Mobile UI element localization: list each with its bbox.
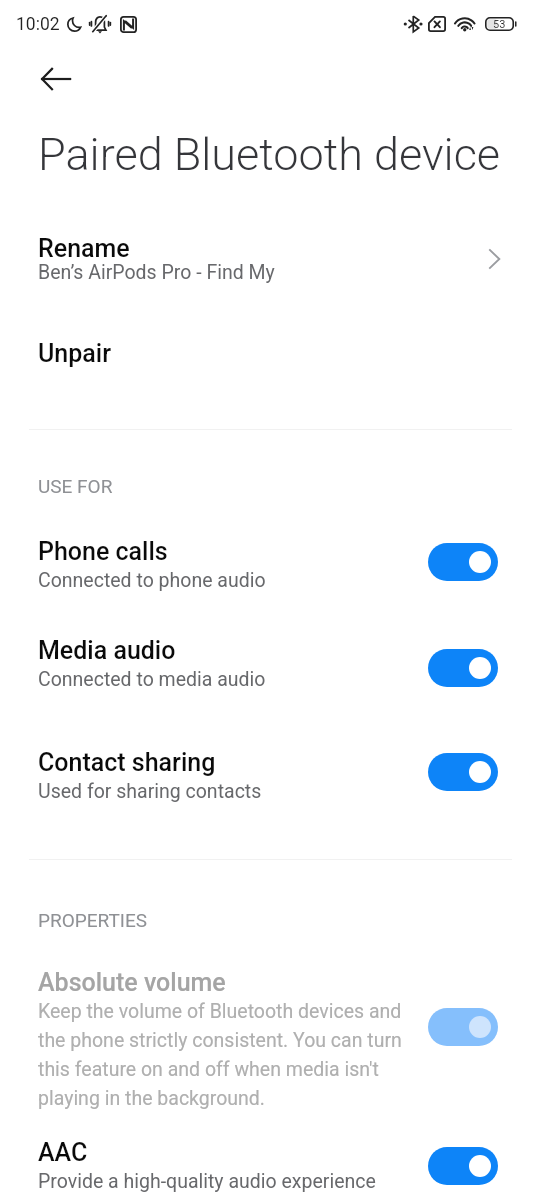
staticText: Media audio (38, 636, 176, 665)
staticText: Paired Bluetooth device (38, 128, 501, 181)
staticText: Ben’s AirPods Pro - Find My (38, 261, 275, 284)
button[interactable]: AAC switch, on (428, 1147, 498, 1185)
button[interactable]: Contact sharing switch, on (428, 753, 498, 791)
staticText: Absolute volume (38, 968, 226, 997)
button[interactable]: Rename (0, 222, 540, 294)
button[interactable]: Absolute volume switch, on (428, 1008, 498, 1046)
staticText: 53 (493, 18, 506, 31)
button[interactable]: Unpair (0, 330, 540, 380)
button[interactable]: Phone calls switch, on (428, 543, 498, 581)
button[interactable]: Media audio switch, on (428, 649, 498, 687)
staticText: Unpair (38, 339, 112, 368)
staticText: Connected to media audio (38, 668, 266, 691)
staticText: Used for sharing contacts (38, 780, 262, 803)
staticText: AAC (38, 1138, 88, 1167)
button[interactable]: Back (33, 56, 79, 102)
staticText: Connected to phone audio (38, 569, 266, 592)
staticText: PROPERTIES (38, 909, 148, 931)
staticText: 10:02 (16, 14, 60, 35)
staticText: Phone calls (38, 537, 168, 566)
button[interactable]: Contact sharing (0, 736, 540, 831)
staticText: Rename (38, 234, 130, 263)
staticText: Provide a high-quality audio experience (38, 1170, 376, 1193)
staticText: Keep the volume of Bluetooth devices and… (38, 1000, 404, 1110)
button[interactable]: Absolute volume (0, 956, 540, 1116)
button[interactable]: Phone calls (0, 525, 540, 620)
staticText: Contact sharing (38, 748, 216, 777)
button[interactable]: Media audio (0, 624, 540, 719)
staticText: USE FOR (38, 475, 113, 497)
button[interactable]: AAC (0, 1126, 540, 1200)
